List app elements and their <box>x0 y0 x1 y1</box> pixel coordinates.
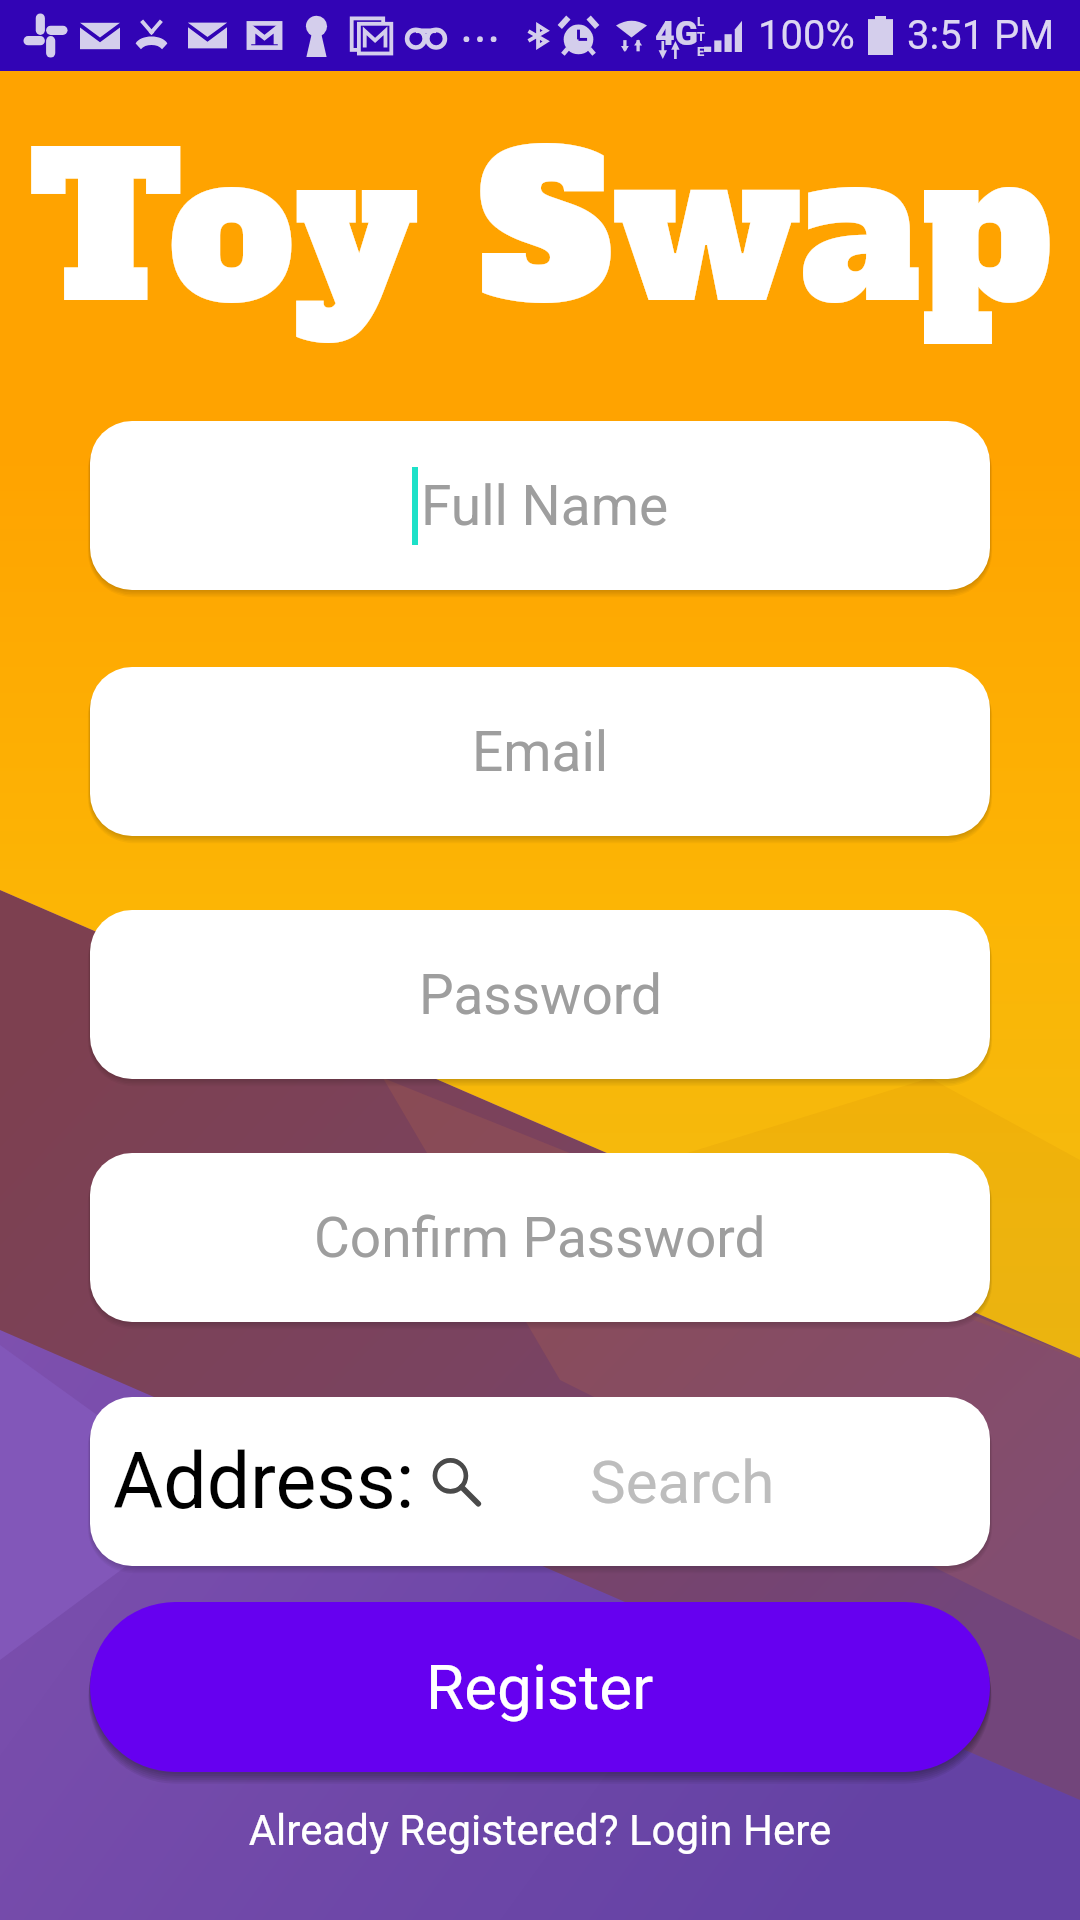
staticText: Email <box>472 720 609 784</box>
staticText: 3:51 PM <box>907 12 1055 59</box>
staticText: Register <box>426 1651 654 1724</box>
button[interactable]: Confirm Password <box>90 1153 990 1322</box>
button[interactable]: Email <box>90 667 990 836</box>
staticText: LTE <box>697 14 700 59</box>
staticText: Toy Swap <box>28 95 1052 366</box>
other: Search <box>425 1451 487 1513</box>
button[interactable]: Address: <box>90 1397 990 1566</box>
staticText: Address: <box>113 1437 415 1527</box>
staticText: 100% <box>758 12 855 59</box>
button[interactable]: Register <box>90 1602 990 1772</box>
staticText: Confirm Password <box>314 1206 766 1270</box>
staticText: Password <box>419 963 662 1027</box>
staticText: Search <box>590 1447 775 1517</box>
staticText: 4G <box>655 13 698 53</box>
button[interactable]: Password <box>90 910 990 1079</box>
staticText: Full Name <box>421 474 669 538</box>
button[interactable]: Already Registered? Login Here <box>0 1806 1080 1855</box>
button[interactable]: Full Name <box>90 421 990 590</box>
